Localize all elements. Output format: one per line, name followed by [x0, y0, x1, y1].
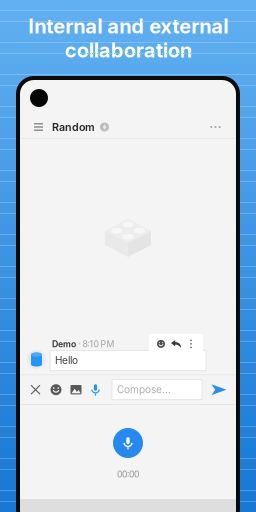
staticText: · 8:10 PM — [78, 339, 114, 349]
button[interactable]: Emoji — [49, 381, 63, 399]
staticText: 00:00 — [117, 469, 139, 479]
button[interactable]: Send — [210, 381, 228, 399]
button[interactable]: Record voice message — [113, 428, 143, 458]
button[interactable]: Random — [20, 116, 236, 138]
staticText: Internal and external collaboration — [28, 14, 228, 62]
button[interactable]: Voice message — [89, 381, 102, 399]
button[interactable]: Close — [29, 381, 42, 399]
staticText: Hello — [55, 354, 78, 366]
button[interactable]: Photo — [69, 381, 83, 399]
staticText: Compose... — [117, 384, 171, 396]
staticText: Random — [52, 120, 95, 133]
staticText: Demo — [52, 339, 76, 349]
